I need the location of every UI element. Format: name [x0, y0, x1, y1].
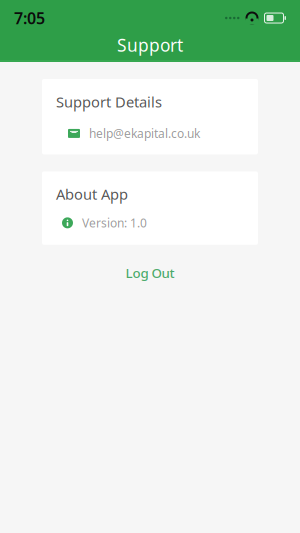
staticText: Version: 1.0: [82, 215, 147, 231]
staticText: Support Details: [56, 92, 162, 111]
button[interactable]: Log Out: [42, 259, 258, 287]
staticText: 7:05: [14, 7, 45, 29]
staticText: About App: [56, 184, 128, 204]
button[interactable]: help@ekapital.co.uk: [42, 111, 258, 154]
staticText: Log Out: [125, 264, 174, 282]
staticText: help@ekapital.co.uk: [89, 125, 200, 141]
staticText: Support: [117, 33, 183, 56]
